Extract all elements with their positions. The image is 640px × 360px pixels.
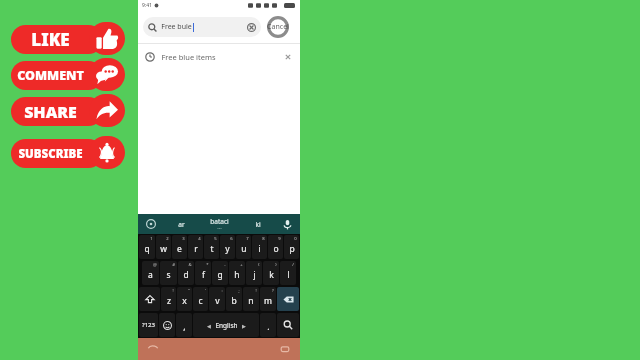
button[interactable]: Recents xyxy=(280,344,290,354)
button[interactable]: Search xyxy=(143,17,261,37)
button[interactable]: 2 xyxy=(156,235,171,259)
staticText: i xyxy=(258,243,261,255)
button[interactable]: Free blue items xyxy=(138,44,300,70)
button[interactable]: SHARE xyxy=(11,94,125,127)
staticText: v xyxy=(215,295,220,307)
staticText: ( xyxy=(258,262,260,268)
button[interactable]: 0 xyxy=(284,235,299,259)
button[interactable]: COMMENT xyxy=(11,58,125,91)
button[interactable]: ! xyxy=(243,287,259,311)
staticText: / xyxy=(292,262,294,268)
button[interactable]: 4 xyxy=(188,235,203,259)
button[interactable]: Clear xyxy=(247,23,256,32)
staticText: ar xyxy=(178,220,185,229)
button[interactable]: * xyxy=(195,261,211,285)
button[interactable]: ' xyxy=(193,287,208,311)
button[interactable]: Remove xyxy=(283,52,293,62)
staticText: ) xyxy=(275,262,277,268)
button[interactable]: : xyxy=(209,287,225,311)
button[interactable]: SUBSCRIBE xyxy=(11,136,125,169)
button[interactable]: Emoji xyxy=(159,313,175,337)
button[interactable]: 9 xyxy=(268,235,283,259)
button[interactable]: Back xyxy=(148,344,158,354)
staticText: 4 xyxy=(198,236,201,242)
staticText: t xyxy=(210,243,214,255)
staticText: " xyxy=(188,288,190,294)
staticText: LIKE xyxy=(31,28,70,51)
staticText: p xyxy=(289,243,295,255)
button[interactable]: Settings xyxy=(138,214,164,234)
button[interactable]: ◀ xyxy=(193,313,259,337)
button[interactable]: bataci xyxy=(198,214,241,234)
button[interactable]: LIKE xyxy=(11,22,125,55)
staticText: 8 xyxy=(262,236,265,242)
staticText: SHARE xyxy=(24,101,77,123)
staticText: English xyxy=(215,321,238,330)
staticText: z xyxy=(167,295,171,307)
staticText: . xyxy=(267,321,270,333)
button[interactable]: ; xyxy=(226,287,242,311)
button[interactable]: 1 xyxy=(139,235,155,259)
staticText: 9 xyxy=(278,236,281,242)
staticText: h xyxy=(234,269,240,281)
staticText: x xyxy=(182,295,187,307)
button[interactable]: / xyxy=(280,261,296,285)
staticText: u xyxy=(241,243,247,255)
button[interactable]: 5 xyxy=(204,235,219,259)
staticText: 5 xyxy=(214,236,217,242)
staticText: 2 xyxy=(166,236,169,242)
staticText: bataci xyxy=(210,217,229,226)
button[interactable]: , xyxy=(176,313,192,337)
button[interactable]: ( xyxy=(246,261,262,285)
button[interactable]: 6 xyxy=(220,235,235,259)
button[interactable]: 7 xyxy=(236,235,251,259)
staticText: s xyxy=(166,269,171,281)
staticText: c xyxy=(198,295,203,307)
staticText: * xyxy=(206,262,209,268)
staticText: n xyxy=(248,295,254,307)
staticText: - xyxy=(224,262,226,268)
staticText: e xyxy=(177,243,182,255)
staticText: Free bule xyxy=(161,22,192,32)
staticText: r xyxy=(194,243,198,255)
button[interactable]: - xyxy=(212,261,228,285)
staticText: & xyxy=(188,262,192,268)
staticText: ' xyxy=(205,288,206,294)
button[interactable]: ! xyxy=(161,287,176,311)
staticText: ! xyxy=(172,288,174,294)
staticText: ? xyxy=(272,288,274,294)
button[interactable]: . xyxy=(260,313,276,337)
button[interactable]: " xyxy=(177,287,192,311)
button[interactable]: 3 xyxy=(172,235,187,259)
staticText: m xyxy=(264,295,272,307)
staticText: j xyxy=(253,269,256,281)
staticText: 6 xyxy=(230,236,233,242)
staticText: a xyxy=(148,269,153,281)
staticText: @ xyxy=(153,262,157,268)
button[interactable]: ar xyxy=(164,214,198,234)
button[interactable]: # xyxy=(160,261,177,285)
button[interactable]: ? xyxy=(260,287,276,311)
staticText: l xyxy=(287,269,290,281)
button[interactable]: Cancel xyxy=(261,14,295,40)
staticText: ; xyxy=(238,288,240,294)
button[interactable]: + xyxy=(229,261,245,285)
staticText: ki xyxy=(255,220,261,229)
button[interactable]: Search xyxy=(277,313,299,337)
staticText: COMMENT xyxy=(17,67,84,84)
staticText: ••• xyxy=(217,226,222,231)
button[interactable]: ki xyxy=(241,214,274,234)
staticText: 7 xyxy=(246,236,249,242)
staticText: , xyxy=(183,321,186,333)
button[interactable]: Voice input xyxy=(274,214,300,234)
staticText: d xyxy=(183,269,189,281)
button[interactable]: Shift xyxy=(139,287,160,311)
button[interactable]: Backspace xyxy=(277,287,299,311)
staticText: w xyxy=(160,243,167,255)
button[interactable]: ?123 xyxy=(139,313,158,337)
staticText: 3 xyxy=(182,236,185,242)
button[interactable]: 8 xyxy=(252,235,267,259)
button[interactable]: ) xyxy=(263,261,279,285)
button[interactable]: & xyxy=(178,261,194,285)
button[interactable]: @ xyxy=(142,261,159,285)
